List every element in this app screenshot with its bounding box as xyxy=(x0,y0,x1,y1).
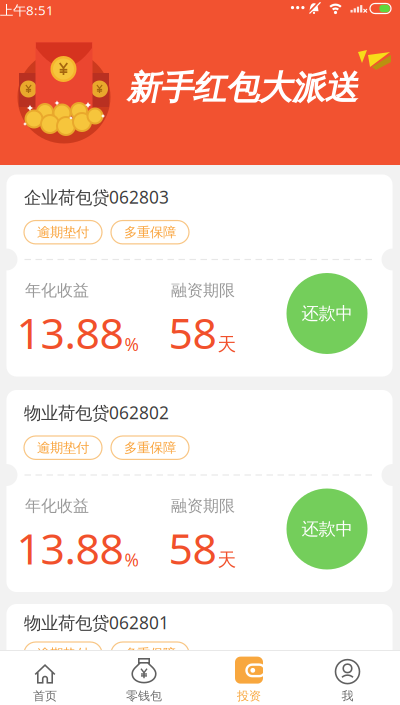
staticText: 融资期限 xyxy=(171,496,235,516)
staticText: 逾期垫付 xyxy=(37,645,89,662)
staticText: 逾期垫付 xyxy=(37,439,89,456)
staticText: 年化收益 xyxy=(25,280,89,300)
staticText: 融资期限 xyxy=(171,280,235,300)
staticText: 多重保障 xyxy=(124,645,176,662)
button[interactable]: 物业荷包贷062801 xyxy=(6,604,392,705)
button[interactable]: 我 xyxy=(300,651,400,705)
staticText: 多重保障 xyxy=(124,439,176,456)
button[interactable]: 首页 xyxy=(0,651,100,705)
staticText: 天 xyxy=(217,333,236,356)
staticText: 零钱包 xyxy=(126,689,162,703)
button[interactable]: 新手红包大派送 xyxy=(0,0,400,165)
staticText: 投资 xyxy=(237,689,261,703)
staticText: % xyxy=(124,548,138,571)
staticText: 多重保障 xyxy=(124,224,176,240)
staticText: 13.88 xyxy=(16,304,123,361)
button[interactable]: 零钱包 xyxy=(100,651,200,705)
button[interactable]: 物业荷包贷062802 xyxy=(6,390,392,592)
staticText: 58 xyxy=(168,519,216,576)
staticText: 还款中 xyxy=(301,518,352,540)
staticText: 首页 xyxy=(33,689,57,703)
staticText: 还款中 xyxy=(301,303,352,324)
staticText: 上午8:51 xyxy=(0,1,54,19)
staticText: % xyxy=(124,333,138,356)
staticText: 物业荷包贷062801 xyxy=(24,611,169,634)
staticText: 天 xyxy=(217,548,236,571)
staticText: 年化收益 xyxy=(25,496,89,516)
staticText: 13.88 xyxy=(16,519,123,576)
staticText: 58 xyxy=(168,304,216,361)
button[interactable]: 企业荷包贷062803 xyxy=(6,174,392,376)
staticText: 新手红包大派送 xyxy=(126,67,357,108)
staticText: 企业荷包贷062803 xyxy=(24,185,169,208)
staticText: 我 xyxy=(341,689,353,703)
staticText: 逾期垫付 xyxy=(37,224,89,240)
button[interactable]: 投资 xyxy=(200,651,300,705)
staticText: 物业荷包贷062802 xyxy=(24,401,169,424)
